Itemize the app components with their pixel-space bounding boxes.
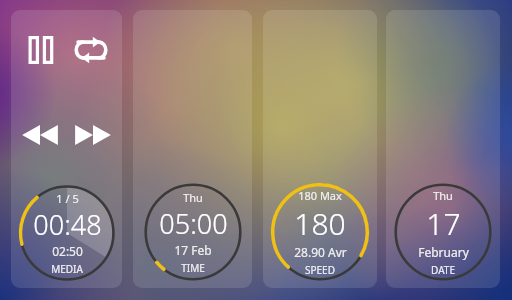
- staticText: 17: [426, 203, 461, 244]
- button[interactable]: 180 Max: [263, 10, 377, 288]
- staticText: 180: [294, 203, 346, 244]
- button[interactable]: Thu: [386, 10, 500, 288]
- staticText: 02:50: [52, 243, 83, 259]
- staticText: 1 / 5: [56, 191, 79, 206]
- staticText: 05:00: [159, 205, 228, 242]
- staticText: Thu: [433, 188, 453, 203]
- button[interactable]: Pause: [11, 10, 122, 288]
- button[interactable]: Repeat: [68, 27, 114, 73]
- button[interactable]: Next: [70, 112, 116, 158]
- staticText: 28.90 Avr: [294, 244, 347, 260]
- staticText: February: [418, 244, 469, 260]
- staticText: SPEED: [305, 263, 335, 277]
- staticText: TIME: [181, 261, 205, 275]
- staticText: Thu: [183, 190, 203, 205]
- button[interactable]: Thu: [133, 10, 252, 288]
- staticText: DATE: [431, 263, 455, 277]
- staticText: MEDIA: [51, 262, 83, 276]
- button[interactable]: Pause: [19, 29, 61, 71]
- staticText: 180 Max: [298, 188, 342, 203]
- staticText: 00:48: [33, 206, 102, 243]
- staticText: 17 Feb: [174, 242, 212, 258]
- button[interactable]: Previous: [17, 112, 63, 158]
